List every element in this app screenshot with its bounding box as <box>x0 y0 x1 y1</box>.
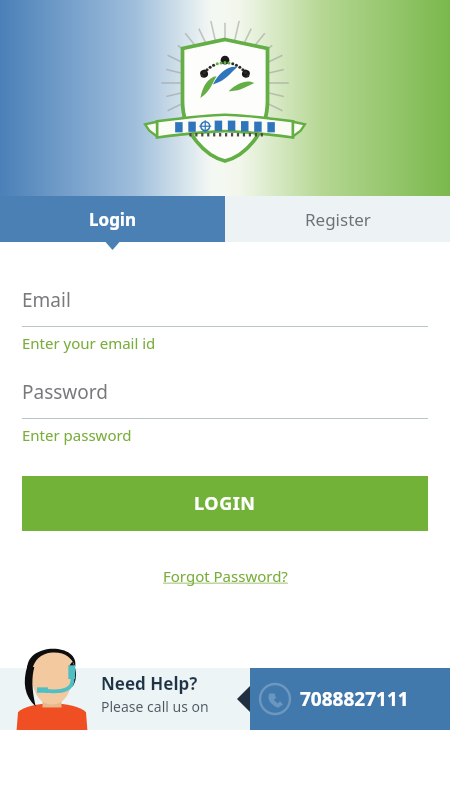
staticText: Enter your email id <box>22 333 156 353</box>
button[interactable]: Call <box>250 668 450 730</box>
staticText: Login <box>89 208 137 231</box>
other: Call <box>258 682 292 716</box>
staticText: Password <box>22 379 108 405</box>
staticText: Email <box>22 287 71 313</box>
staticText: Enter password <box>22 425 132 445</box>
button[interactable]: Login <box>0 196 225 242</box>
staticText: Need Help? <box>101 672 198 695</box>
button[interactable]: Forgot Password? <box>157 560 294 592</box>
staticText: Please call us on <box>101 697 209 716</box>
staticText: Forgot Password? <box>163 566 288 586</box>
staticText: LOGIN <box>194 491 256 516</box>
staticText: Register <box>305 208 371 231</box>
button[interactable]: Password <box>0 379 450 445</box>
staticText: 7088827111 <box>300 686 409 712</box>
button[interactable]: Register <box>225 196 450 242</box>
button[interactable]: LOGIN <box>22 476 428 531</box>
button[interactable]: Email <box>0 287 450 353</box>
